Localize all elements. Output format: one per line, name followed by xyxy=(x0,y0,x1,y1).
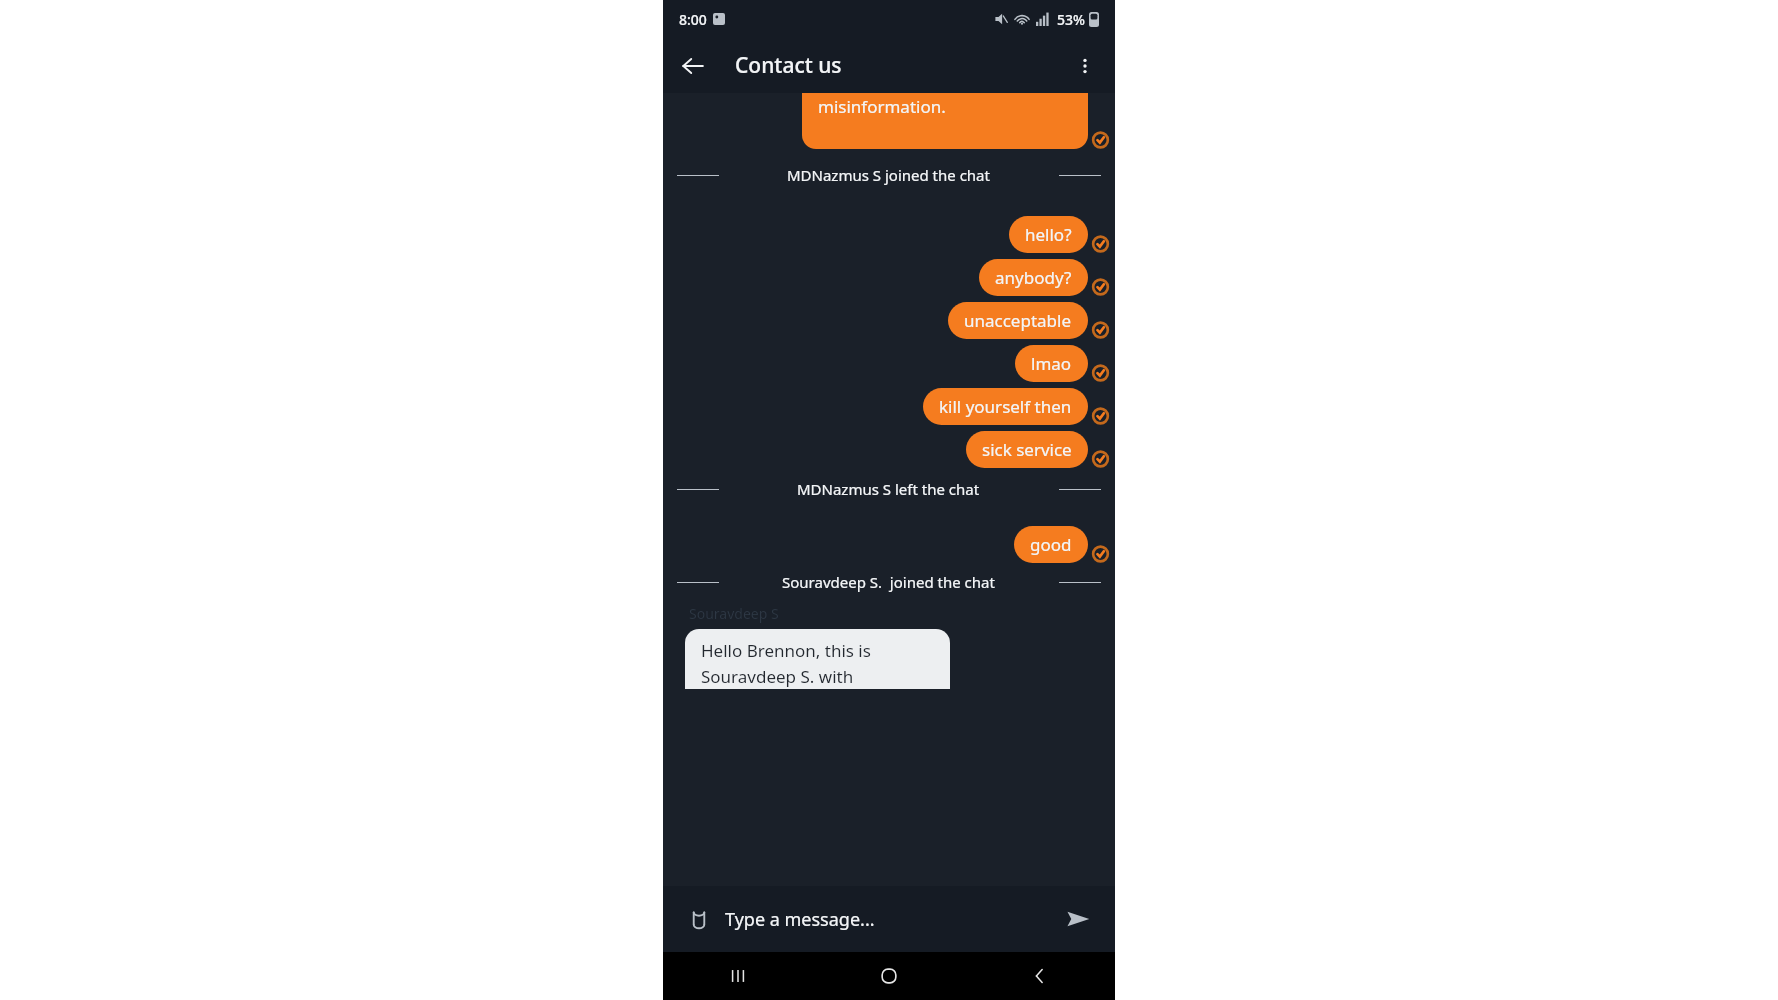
staticText: Contact us xyxy=(735,51,842,80)
staticText: Souravdeep S xyxy=(689,604,779,623)
button[interactable]: Back xyxy=(964,952,1115,1000)
button[interactable]: good xyxy=(1014,526,1088,563)
staticText: anybody? xyxy=(995,266,1072,289)
staticText: kill yourself then xyxy=(939,395,1072,418)
button[interactable]: Type a message... xyxy=(725,907,1057,932)
button[interactable]: Hello Brennon, this is Souravdeep S. wit… xyxy=(685,629,950,689)
staticText: MDNazmus S joined the chat xyxy=(787,165,990,185)
button[interactable]: Attach file xyxy=(679,899,719,939)
staticText: unacceptable xyxy=(964,309,1072,332)
button[interactable]: Home xyxy=(813,952,964,1000)
button[interactable]: Back xyxy=(671,44,715,88)
button[interactable]: misinformation. xyxy=(802,93,1088,149)
staticText: good xyxy=(1030,533,1072,556)
staticText: Hello Brennon, this is Souravdeep S. wit… xyxy=(701,639,871,688)
staticText: misinformation. xyxy=(818,95,946,118)
staticText: hello? xyxy=(1025,223,1072,246)
button[interactable]: unacceptable xyxy=(948,302,1088,339)
button[interactable]: More options xyxy=(1063,44,1107,88)
staticText: lmao xyxy=(1031,352,1072,375)
button[interactable]: Send xyxy=(1057,898,1099,940)
button[interactable]: Recents xyxy=(663,952,813,1000)
button[interactable]: anybody? xyxy=(979,259,1088,296)
button[interactable]: lmao xyxy=(1015,345,1088,382)
staticText: 53% xyxy=(1057,10,1085,29)
staticText: MDNazmus S left the chat xyxy=(797,479,980,499)
staticText: Souravdeep S. joined the chat xyxy=(782,572,995,592)
button[interactable]: kill yourself then xyxy=(923,388,1088,425)
staticText: sick service xyxy=(982,438,1072,461)
button[interactable]: hello? xyxy=(1009,216,1088,253)
button[interactable]: sick service xyxy=(966,431,1088,468)
staticText: Type a message... xyxy=(725,907,875,932)
staticText: 8:00 xyxy=(679,10,707,29)
